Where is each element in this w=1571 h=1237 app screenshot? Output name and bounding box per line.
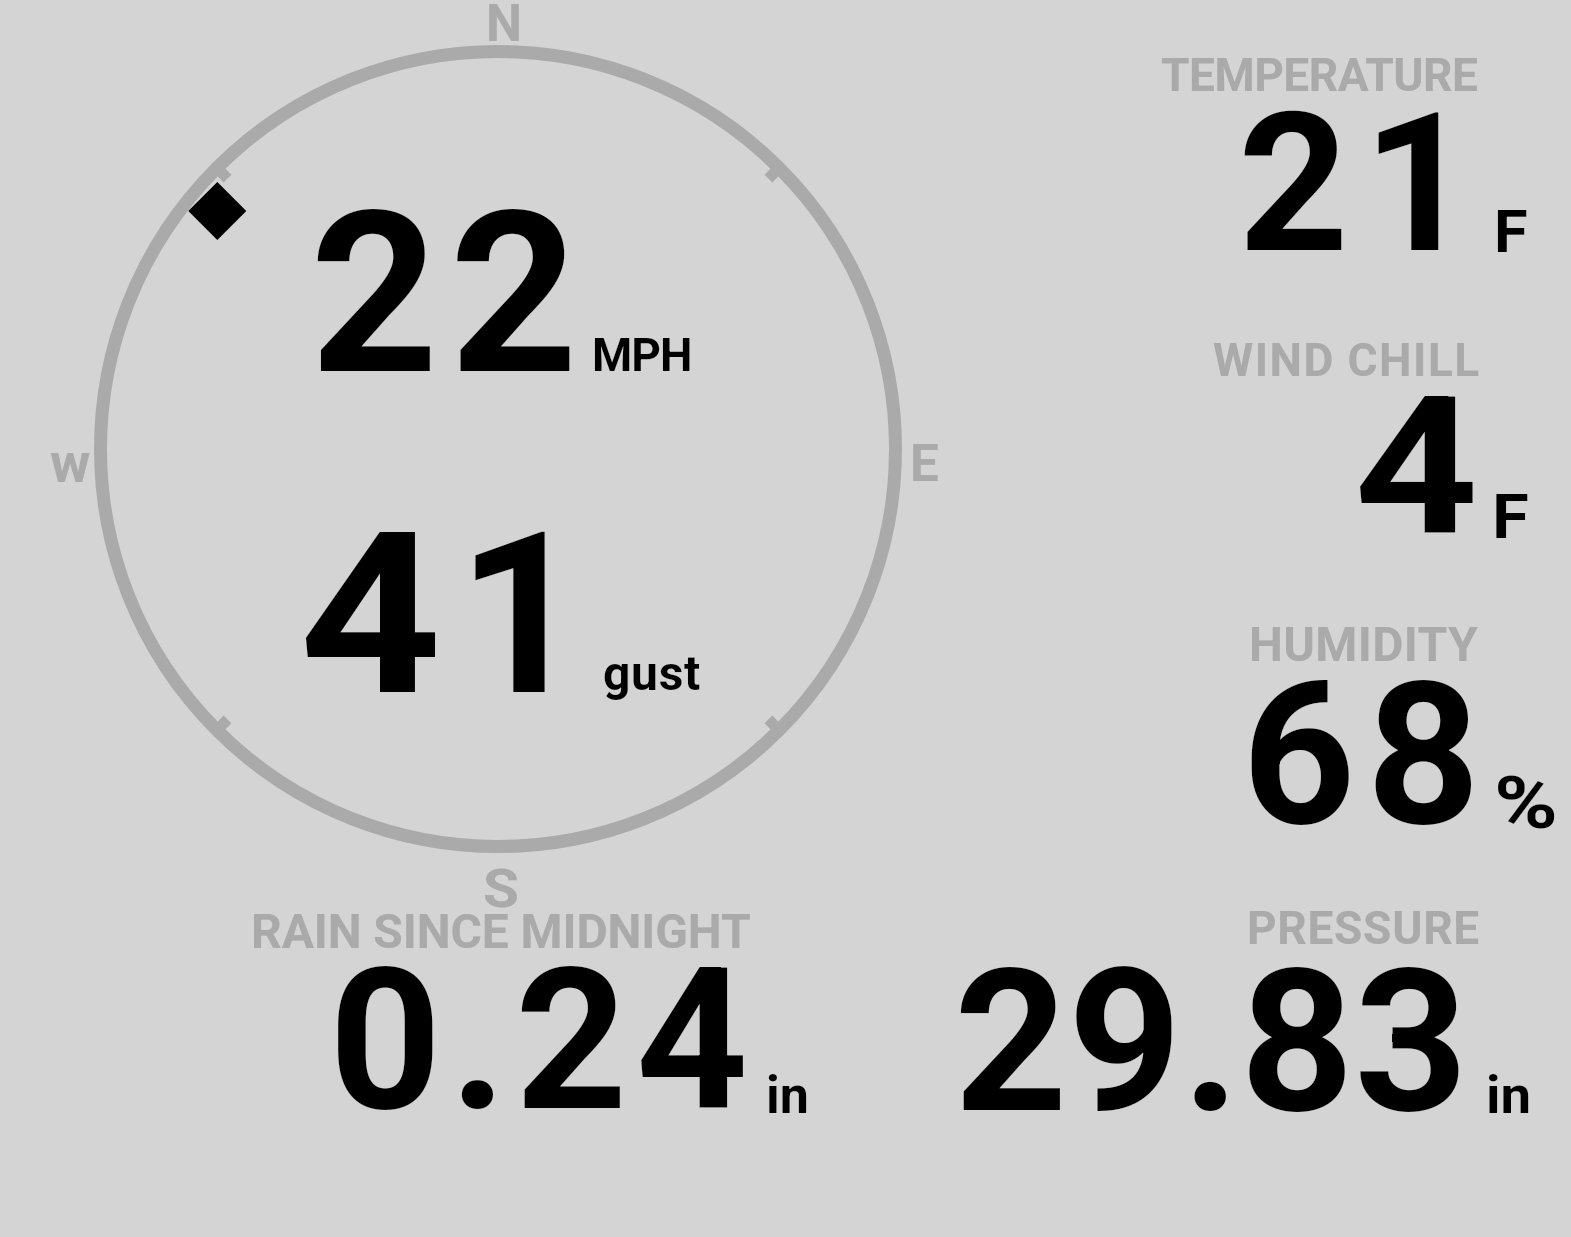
staticText: TEMPERATURE (1161, 45, 1478, 103)
staticText: 4 (1354, 343, 1479, 583)
staticText: in (766, 1062, 809, 1127)
staticText: E (910, 431, 939, 495)
staticText: F (1492, 478, 1529, 554)
staticText: F (1494, 194, 1528, 268)
button[interactable]: Rain since midnight 0.24 inches (190, 870, 830, 1135)
staticText: N (486, 0, 522, 55)
button[interactable]: Temperature 21 degrees Fahrenheit (1080, 20, 1571, 285)
button[interactable]: Pressure 29.83 inches (1080, 870, 1571, 1135)
staticText: 22 (310, 149, 590, 429)
staticText: in (1486, 1062, 1531, 1127)
staticText: 29.83 (954, 914, 1469, 1162)
button[interactable]: Humidity 68 percent (1080, 585, 1571, 850)
staticText: PRESSURE (1247, 898, 1480, 956)
staticText: WIND CHILL (1213, 330, 1481, 388)
staticText: RAIN SINCE MIDNIGHT (251, 900, 751, 960)
staticText: MPH (592, 325, 692, 383)
staticText: 0.24 (329, 914, 757, 1159)
staticText: w (50, 428, 91, 497)
staticText: gust (603, 642, 702, 702)
staticText: 1 (457, 470, 586, 750)
button[interactable]: Wind chill 4 degrees Fahrenheit (1080, 300, 1571, 565)
staticText: S (483, 854, 520, 922)
staticText: 68 (1242, 627, 1492, 875)
staticText: HUMIDITY (1249, 613, 1479, 673)
staticText: 21 (1238, 59, 1488, 300)
staticText: 4 (299, 470, 442, 750)
button[interactable]: Wind 22 miles per hour, gusting 41, from… (94, 45, 902, 853)
staticText: % (1494, 757, 1559, 847)
